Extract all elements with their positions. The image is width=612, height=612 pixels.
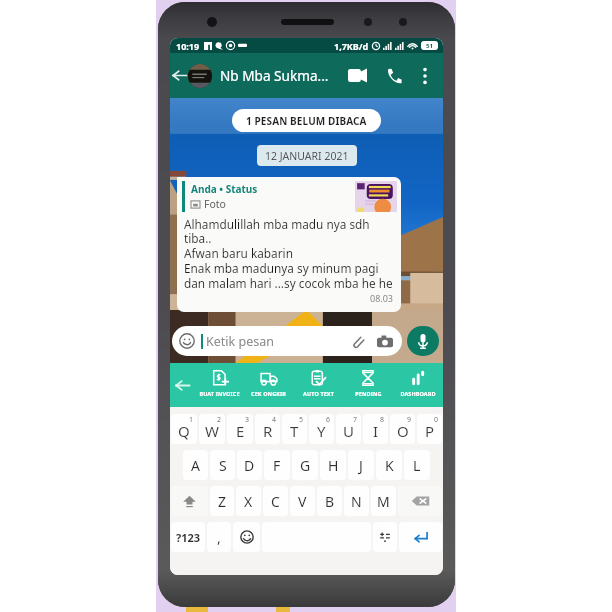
button[interactable]: , <box>207 522 231 552</box>
button[interactable] <box>171 486 208 516</box>
staticText: S <box>219 456 227 475</box>
button[interactable]: Y <box>309 414 334 444</box>
button[interactable]: R <box>255 414 280 444</box>
staticText: Z <box>218 492 227 511</box>
staticText: Q <box>178 421 190 441</box>
staticText: AUTO TEXT <box>303 390 334 397</box>
button[interactable]: V <box>290 486 315 516</box>
button[interactable]: U <box>336 414 361 444</box>
staticText: X <box>244 492 253 511</box>
button[interactable]: CEK ONGKIR <box>244 363 293 407</box>
staticText: , <box>217 528 221 547</box>
button[interactable]: J <box>348 450 374 480</box>
button[interactable]: K <box>376 450 402 480</box>
button[interactable]: Q <box>171 414 197 444</box>
staticText: M <box>377 492 390 511</box>
staticText: Y <box>317 421 326 441</box>
staticText: T <box>290 421 299 441</box>
staticText: D <box>244 456 255 475</box>
button[interactable]: Anda • Status <box>177 177 401 312</box>
button[interactable] <box>233 522 260 552</box>
staticText: A <box>191 456 200 475</box>
button[interactable]: F <box>264 450 290 480</box>
staticText: Foto <box>204 197 226 211</box>
button[interactable]: B <box>317 486 342 516</box>
button[interactable]: 1 PESAN BELUM DIBACA <box>232 109 381 132</box>
staticText: 10:19 <box>176 40 200 52</box>
button[interactable]: Nb Mba Sukma... <box>220 66 329 85</box>
staticText: G <box>300 456 311 475</box>
staticText: F <box>273 456 281 475</box>
button[interactable]: H <box>320 450 346 480</box>
staticText: 5 <box>299 415 304 425</box>
button[interactable] <box>373 522 397 552</box>
button[interactable]: O <box>390 414 415 444</box>
staticText: 51 <box>426 42 433 50</box>
staticText: B <box>325 492 335 511</box>
staticText: O <box>397 421 409 441</box>
staticText: 08.03 <box>370 292 394 304</box>
button[interactable]: Back <box>170 53 188 98</box>
button[interactable]: L <box>404 450 430 480</box>
staticText: 7 <box>353 415 358 425</box>
staticText: P <box>425 421 435 441</box>
button[interactable]: Call <box>375 53 413 98</box>
button[interactable]: T <box>282 414 307 444</box>
staticText: DASHBOARD <box>400 390 436 397</box>
button[interactable]: DASHBOARD <box>393 363 443 407</box>
button[interactable]: BUAT INVOICE <box>195 363 244 407</box>
button[interactable]: Profile photo <box>188 64 212 88</box>
button[interactable]: Video call <box>342 53 372 98</box>
staticText: C <box>271 492 280 511</box>
button[interactable]: AUTO TEXT <box>293 363 343 407</box>
button[interactable]: N <box>344 486 369 516</box>
button[interactable]: PENDING <box>343 363 393 407</box>
staticText: 3 <box>245 415 250 425</box>
staticText: 1,7KB/d <box>334 40 369 52</box>
staticText: 0 <box>434 415 439 425</box>
button[interactable]: G <box>292 450 318 480</box>
staticText: E <box>236 421 245 441</box>
button[interactable]: X <box>236 486 261 516</box>
staticText: K <box>385 456 394 475</box>
staticText: 8 <box>380 415 385 425</box>
button[interactable]: ?123 <box>171 522 205 552</box>
button[interactable]: Ketik pesan <box>172 326 402 356</box>
staticText: Anda • Status <box>191 182 258 196</box>
button[interactable]: P <box>417 414 442 444</box>
staticText: V <box>298 492 307 511</box>
button[interactable]: I <box>363 414 388 444</box>
staticText: 4 <box>272 415 277 425</box>
staticText: ?123 <box>176 530 201 545</box>
staticText: 2 <box>217 415 222 425</box>
staticText: 1 PESAN BELUM DIBACA <box>246 114 367 128</box>
button[interactable]: Attach <box>347 331 367 351</box>
button[interactable]: S <box>210 450 235 480</box>
button[interactable]: C <box>263 486 288 516</box>
staticText: W <box>205 421 219 441</box>
button[interactable]: A <box>183 450 208 480</box>
staticText: Ketik pesan <box>206 333 274 350</box>
staticText: I <box>373 421 379 441</box>
staticText: R <box>263 421 273 441</box>
button[interactable]: M <box>371 486 396 516</box>
staticText: 1 <box>189 415 194 425</box>
button[interactable]: More options <box>413 53 436 98</box>
button[interactable]: Voice message <box>407 326 439 356</box>
button[interactable]: Z <box>210 486 234 516</box>
button[interactable]: E <box>227 414 253 444</box>
staticText: BUAT INVOICE <box>199 390 240 397</box>
button[interactable]: Camera <box>375 331 395 351</box>
staticText: L <box>413 456 421 475</box>
staticText: CEK ONGKIR <box>251 390 286 397</box>
staticText: U <box>343 421 354 441</box>
button[interactable]: W <box>199 414 225 444</box>
staticText: J <box>359 456 363 475</box>
button[interactable] <box>399 522 442 552</box>
button[interactable]: Back <box>170 363 195 407</box>
button[interactable] <box>398 486 442 516</box>
button[interactable]: D <box>237 450 262 480</box>
staticText: PENDING <box>355 390 382 397</box>
staticText: H <box>328 456 339 475</box>
